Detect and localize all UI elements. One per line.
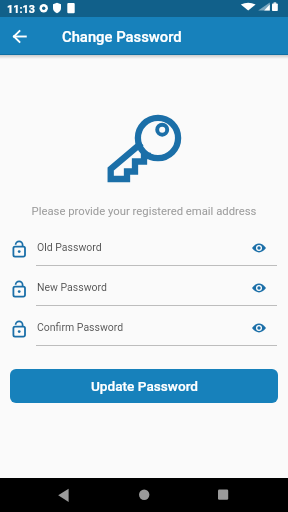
staticText: Confirm Password	[37, 321, 124, 333]
button[interactable]	[247, 236, 271, 260]
staticText: Update Password	[91, 378, 198, 394]
button[interactable]	[8, 312, 280, 344]
staticText: Change Password	[62, 28, 182, 45]
staticText: Please provide your registered email add…	[0, 205, 288, 218]
button[interactable]	[247, 276, 271, 300]
staticText: Old Password	[37, 241, 102, 253]
button[interactable]	[247, 316, 271, 340]
button[interactable]	[6, 23, 34, 51]
button[interactable]	[129, 480, 159, 510]
button[interactable]	[8, 232, 280, 264]
button[interactable]: Update Password	[10, 369, 278, 403]
staticText: 11:13	[7, 3, 35, 16]
button[interactable]	[208, 480, 238, 510]
staticText: New Password	[37, 281, 107, 293]
button[interactable]	[48, 480, 78, 510]
button[interactable]	[8, 272, 280, 304]
